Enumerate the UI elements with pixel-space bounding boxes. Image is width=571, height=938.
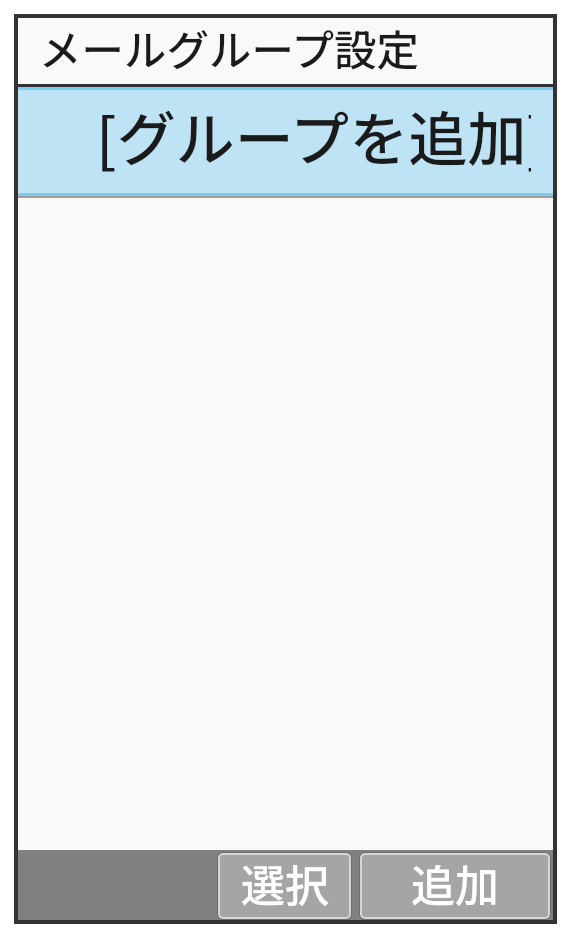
staticText: [グループを追加]: [96, 99, 531, 178]
button[interactable]: 選択: [220, 855, 349, 917]
staticText: メールグループ設定: [39, 17, 419, 79]
button[interactable]: 追加: [362, 855, 548, 917]
staticText: 追加: [411, 855, 499, 913]
staticText: 選択: [241, 855, 329, 913]
button[interactable]: [グループを追加]: [18, 87, 553, 196]
